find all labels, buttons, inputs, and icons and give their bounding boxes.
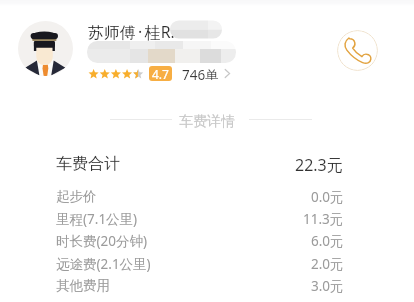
staticText: 车费合计 — [56, 154, 120, 174]
staticText: 0.0元 — [311, 188, 344, 206]
staticText: 远途费(2.1公里) — [56, 255, 151, 273]
button[interactable] — [18, 21, 73, 76]
staticText: 起步价 — [56, 188, 97, 205]
staticText: 11.3元 — [303, 210, 344, 228]
staticText: 里程(7.1公里) — [56, 210, 138, 228]
staticText: 3.0元 — [311, 277, 344, 295]
staticText: 4.7 — [152, 66, 169, 81]
staticText: 746单 — [182, 66, 219, 80]
button[interactable]: Call driver — [337, 30, 378, 71]
button[interactable]: 746单 — [182, 66, 231, 80]
staticText: 苏师傅 · 桂R. — [88, 21, 175, 43]
staticText: 车费详情 — [179, 113, 235, 131]
staticText: 其他费用 — [56, 277, 110, 294]
staticText: 时长费(20分钟) — [56, 232, 148, 250]
staticText: 6.0元 — [311, 232, 344, 250]
staticText: 22.3元 — [295, 154, 343, 176]
staticText: 2.0元 — [311, 255, 344, 273]
